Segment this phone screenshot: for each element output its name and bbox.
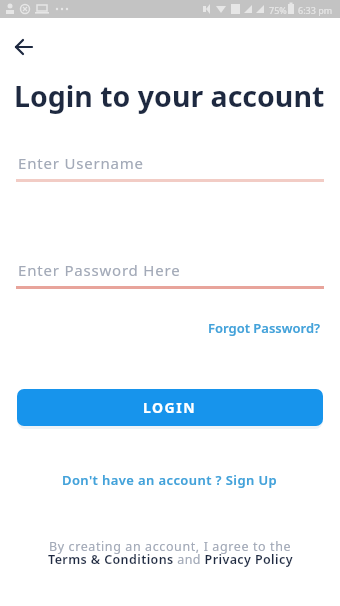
staticText: Forgot Password? — [208, 319, 321, 337]
button[interactable]: LOGIN — [17, 389, 323, 426]
button[interactable]: Don't have an account ? Sign Up — [62, 471, 278, 489]
staticText: Terms & Conditions and Privacy Policy — [48, 551, 293, 568]
staticText: Enter Username — [18, 153, 144, 173]
staticText: 6:33 pm — [298, 4, 333, 16]
button[interactable]: Enter Password Here — [16, 256, 324, 289]
button[interactable]: Terms & Conditions and Privacy Policy — [48, 551, 293, 568]
staticText: By creating an account, I agree to the — [49, 538, 292, 555]
button[interactable]: Forgot Password? — [208, 319, 321, 337]
button[interactable] — [8, 31, 40, 63]
staticText: LOGIN — [143, 398, 197, 417]
staticText: Enter Password Here — [18, 260, 181, 280]
button[interactable]: Enter Username — [16, 149, 324, 182]
staticText: Login to your account — [14, 77, 325, 116]
staticText: Don't have an account ? Sign Up — [62, 471, 278, 489]
staticText: 75% — [269, 4, 287, 16]
